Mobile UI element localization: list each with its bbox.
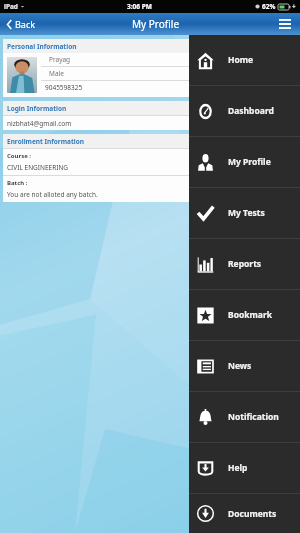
button[interactable]: Notification (189, 392, 300, 442)
button[interactable]: Menu (275, 14, 295, 34)
staticText: Enrollment Information (7, 137, 85, 146)
staticText: Reports (228, 258, 262, 270)
staticText: Male (49, 69, 64, 78)
button[interactable]: My Tests (189, 188, 300, 238)
staticText: News (228, 360, 252, 372)
staticText: 3:06 PM (127, 2, 152, 11)
staticText: Bookmark (228, 309, 272, 321)
staticText: Dashboard (228, 105, 274, 117)
staticText: + (292, 2, 296, 11)
staticText: Batch : (7, 179, 28, 187)
staticText: 62% (262, 2, 276, 11)
staticText: My Tests (228, 207, 265, 219)
staticText: 9045598325 (45, 83, 83, 92)
button[interactable]: My Profile (189, 137, 300, 187)
button[interactable]: News (189, 341, 300, 391)
staticText: My Profile (228, 156, 271, 168)
button[interactable]: Home (189, 35, 300, 85)
button[interactable]: Dashboard (189, 86, 300, 136)
staticText: Course : (7, 152, 32, 160)
button[interactable]: Back (5, 16, 38, 32)
staticText: Documents (228, 508, 277, 520)
button[interactable]: Bookmark (189, 290, 300, 340)
button[interactable]: Documents (189, 494, 300, 533)
staticText: CIVIL ENGINEERING (7, 163, 69, 172)
staticText: iPad (4, 2, 18, 11)
staticText: You are not alloted any batch. (7, 190, 98, 199)
staticText: Prayag (49, 55, 71, 64)
staticText: Back (15, 18, 36, 30)
staticText: Personal Information (7, 42, 77, 51)
staticText: nizbhat4@gmail.com (7, 119, 72, 128)
button[interactable]: Help (189, 443, 300, 493)
staticText: Home (228, 54, 254, 66)
staticText: Help (228, 462, 248, 474)
staticText: Login Information (7, 104, 67, 113)
button[interactable]: Reports (189, 239, 300, 289)
staticText: My Profile (132, 17, 180, 31)
staticText: Notification (228, 411, 279, 423)
